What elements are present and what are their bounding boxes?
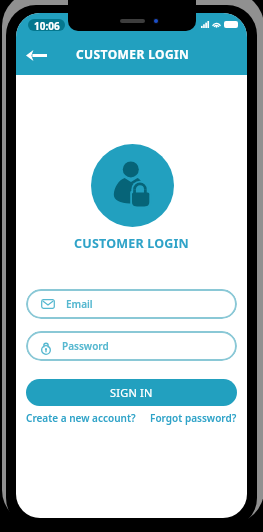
button[interactable]: Email	[26, 289, 237, 319]
staticText: Password	[62, 339, 109, 353]
staticText: Email	[66, 297, 93, 311]
staticText: SIGN IN	[110, 385, 153, 400]
button[interactable]: Password	[26, 331, 237, 361]
button[interactable]: Create a new account?	[26, 411, 136, 425]
staticText: CUSTOMER LOGIN	[74, 235, 189, 252]
staticText: CUSTOMER LOGIN	[76, 46, 190, 62]
button[interactable]: Back	[23, 42, 49, 68]
staticText: 10:06	[34, 19, 60, 31]
button[interactable]: SIGN IN	[26, 379, 237, 406]
staticText: Forgot password?	[150, 411, 237, 425]
staticText: Create a new account?	[26, 411, 136, 425]
button[interactable]: Forgot password?	[150, 411, 237, 425]
